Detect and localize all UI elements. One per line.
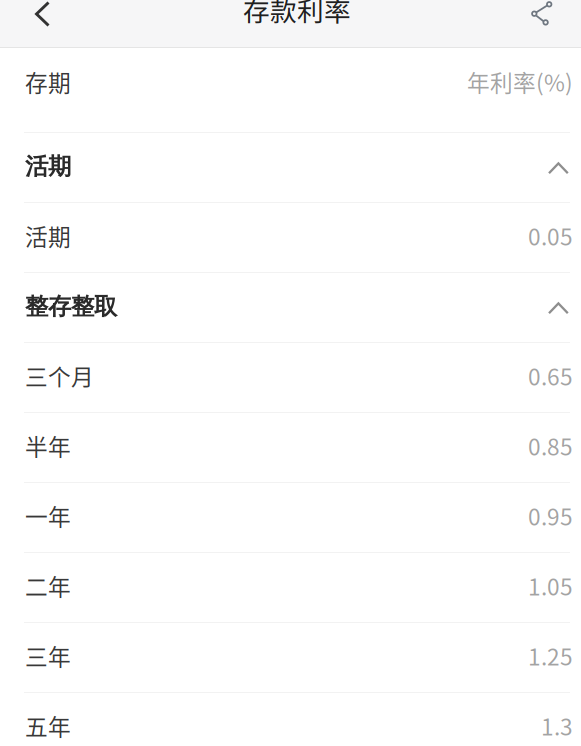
button[interactable]: 三个月 xyxy=(0,343,581,412)
staticText: 1.3 xyxy=(541,709,573,742)
button[interactable]: 三年 xyxy=(0,623,581,692)
staticText: 活期 xyxy=(25,152,71,181)
staticText: 二年 xyxy=(25,569,71,602)
staticText: 存期 xyxy=(25,65,71,98)
staticText: 活期 xyxy=(25,219,71,252)
staticText: 一年 xyxy=(25,499,71,532)
staticText: 存款利率 xyxy=(243,0,351,29)
staticText: 年利率(%) xyxy=(467,65,573,98)
staticText: 半年 xyxy=(25,429,71,462)
staticText: 五年 xyxy=(25,709,71,742)
button[interactable]: 五年 xyxy=(0,693,581,746)
button[interactable]: 半年 xyxy=(0,413,581,482)
button[interactable]: 活期 xyxy=(0,133,581,202)
button[interactable]: 整存整取 xyxy=(0,273,581,342)
staticText: 三年 xyxy=(25,639,71,672)
button[interactable]: 二年 xyxy=(0,553,581,622)
staticText: 0.95 xyxy=(528,499,573,532)
staticText: 0.85 xyxy=(528,429,573,462)
staticText: 0.65 xyxy=(528,359,573,392)
staticText: 三个月 xyxy=(25,359,94,392)
staticText: 1.05 xyxy=(528,569,573,602)
button[interactable]: 一年 xyxy=(0,483,581,552)
button[interactable]: 活期 xyxy=(0,203,581,272)
staticText: 1.25 xyxy=(528,639,573,672)
button[interactable]: Share xyxy=(481,0,581,47)
button[interactable]: Back xyxy=(0,0,100,47)
staticText: 整存整取 xyxy=(25,292,117,321)
staticText: 0.05 xyxy=(528,219,573,252)
